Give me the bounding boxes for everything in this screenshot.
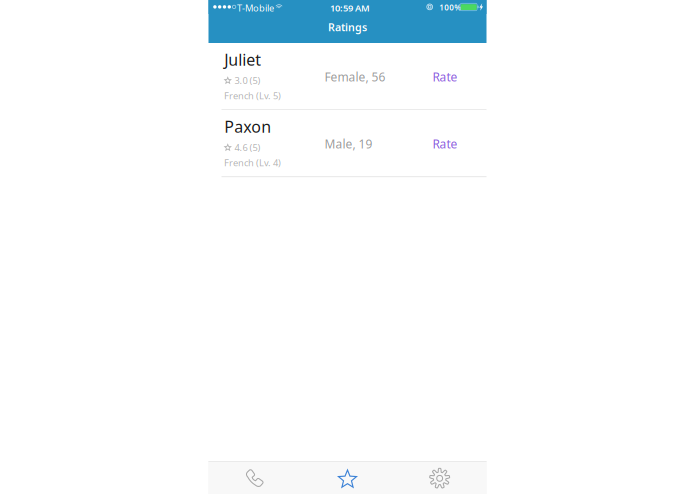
staticText: 100% <box>439 2 461 13</box>
button[interactable]: Paxon <box>208 110 486 177</box>
staticText: 10:59 AM <box>330 2 370 14</box>
button[interactable]: Calls <box>208 462 301 494</box>
staticText: French (Lv. 5) <box>224 89 281 102</box>
button[interactable]: Ratings <box>301 462 394 494</box>
staticText: Rate <box>432 136 457 152</box>
button[interactable]: Juliet <box>208 43 486 110</box>
staticText: Rate <box>432 69 457 85</box>
button[interactable]: Settings <box>394 462 486 494</box>
staticText: Paxon <box>224 116 271 137</box>
staticText: T-Mobile <box>237 2 274 14</box>
staticText: French (Lv. 4) <box>224 156 281 169</box>
staticText: 3.0 (5) <box>234 74 260 87</box>
staticText: Ratings <box>328 20 367 34</box>
staticText: 4.6 (5) <box>234 141 260 154</box>
staticText: Female, 56 <box>324 69 385 85</box>
staticText: Male, 19 <box>324 136 372 152</box>
staticText: Juliet <box>224 49 261 70</box>
